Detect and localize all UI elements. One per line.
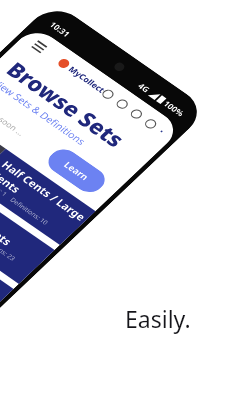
staticText: Learn	[61, 159, 92, 183]
staticText: 4G	[136, 80, 153, 94]
button[interactable]: Three-Cent Pieces	[0, 186, 14, 323]
staticText: Half Cents / Large Cents	[0, 158, 92, 235]
button[interactable]: Half Cents / Large Cents	[0, 108, 96, 245]
staticText: Easily.	[125, 303, 191, 334]
staticText: 10:31	[47, 19, 73, 39]
button[interactable]: Learn	[42, 144, 111, 197]
staticText: coming soon ...	[0, 96, 28, 138]
staticText: Browse Sets	[0, 56, 132, 153]
staticText: # Sets: 1 Definitions: 10	[0, 178, 50, 227]
staticText: View Sets & Definitions	[0, 76, 89, 148]
staticText: Three-Cent Pieces	[0, 240, 2, 306]
staticText: Small Cents	[0, 202, 15, 248]
button[interactable]	[28, 37, 51, 55]
staticText: # Sets: 41 Definitions: 23	[0, 212, 18, 263]
staticText: MyCollect	[66, 64, 108, 95]
button[interactable]: Small Cents	[0, 147, 55, 284]
staticText: 100%	[161, 98, 187, 118]
